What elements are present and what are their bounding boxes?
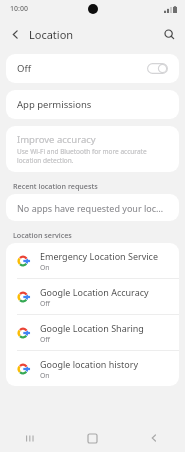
- staticText: Emergency Location Service: [40, 250, 159, 262]
- staticText: Off: [40, 299, 50, 308]
- button[interactable]: Off: [6, 54, 179, 83]
- staticText: Off: [40, 335, 50, 344]
- button[interactable]: Google Location Sharing: [6, 315, 179, 350]
- staticText: 10:00: [10, 4, 28, 14]
- button[interactable]: App permissions: [6, 90, 179, 119]
- button[interactable]: Back: [123, 424, 185, 452]
- staticText: Location: [29, 27, 74, 42]
- staticText: Recent location requests: [13, 181, 98, 191]
- button[interactable]: Improve accuracy: [6, 126, 179, 172]
- staticText: Google location history: [40, 358, 138, 370]
- staticText: Location services: [13, 230, 72, 240]
- staticText: On: [40, 371, 50, 380]
- staticText: No apps have requested your location..: [17, 202, 168, 214]
- button[interactable]: Back: [4, 23, 26, 45]
- button[interactable]: No apps have requested your location..: [6, 194, 179, 221]
- button[interactable]: Recents: [0, 424, 61, 452]
- staticText: Google Location Sharing: [40, 322, 144, 334]
- staticText: Google Location Accuracy: [40, 286, 149, 298]
- staticText: App permissions: [17, 98, 92, 111]
- staticText: On: [40, 263, 50, 272]
- button[interactable]: Search: [158, 23, 180, 45]
- staticText: Use Wi-Fi and Bluetooth for more accurat…: [17, 147, 168, 165]
- staticText: Improve accuracy: [17, 133, 96, 146]
- button[interactable]: Home: [61, 424, 123, 452]
- button[interactable]: Emergency Location Service: [6, 243, 179, 278]
- button[interactable]: Google location history: [6, 351, 179, 386]
- staticText: Off: [17, 62, 31, 75]
- button[interactable]: Google Location Accuracy: [6, 279, 179, 314]
